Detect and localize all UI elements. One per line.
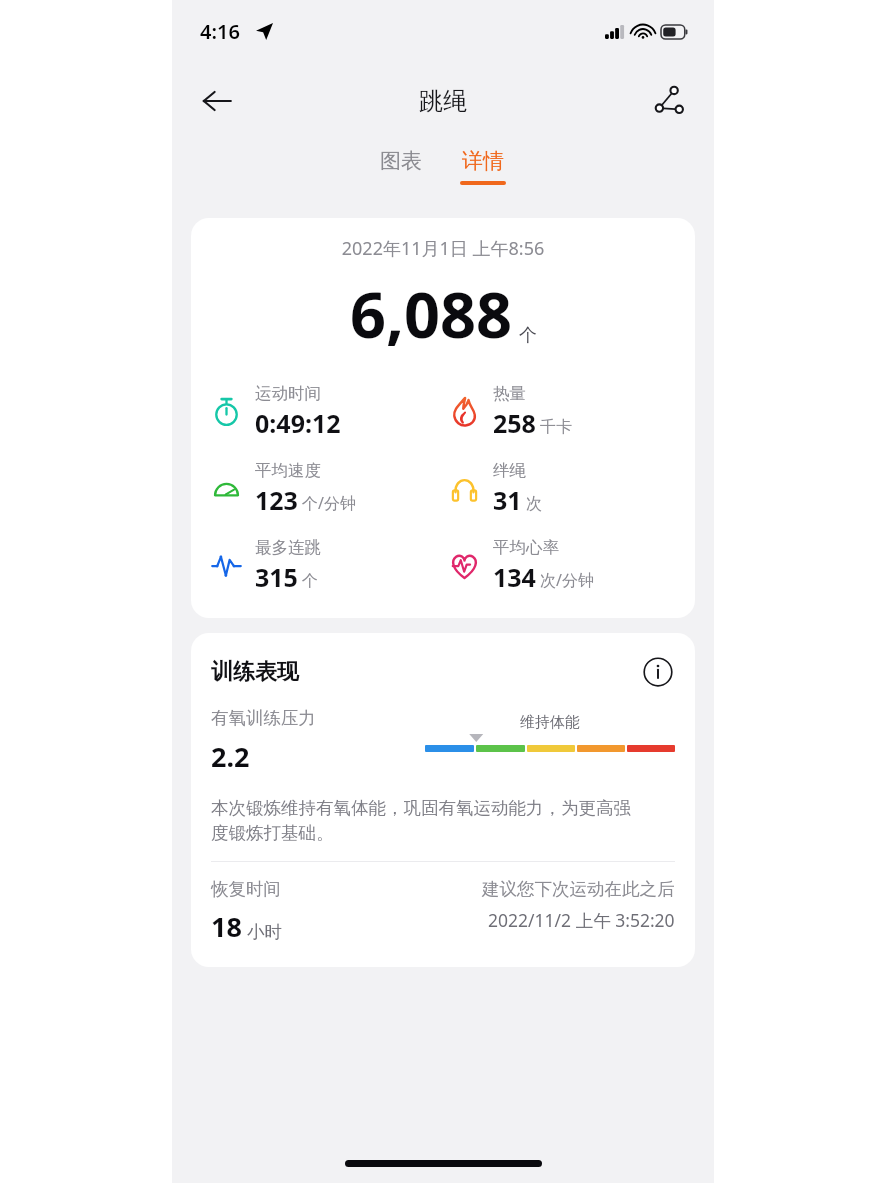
staticText: 6,088 <box>350 271 513 357</box>
staticText: 恢复时间 <box>211 878 281 900</box>
button[interactable]: Share <box>642 74 696 128</box>
button[interactable]: Back <box>190 74 244 128</box>
button[interactable]: 图表 <box>368 140 434 182</box>
staticText: 次/分钟 <box>540 569 594 591</box>
staticText: 2022/11/2 上午 3:52:20 <box>488 908 675 932</box>
staticText: 千卡 <box>540 417 572 437</box>
staticText: 跳绳 <box>419 86 467 116</box>
staticText: 个/分钟 <box>302 492 356 514</box>
staticText: 258 <box>493 406 536 440</box>
staticText: 18 <box>211 908 242 945</box>
staticText: 个 <box>302 571 318 591</box>
staticText: 0:49:12 <box>255 406 341 440</box>
staticText: 123 <box>255 483 298 517</box>
staticText: 平均速度 <box>255 460 321 481</box>
staticText: 小时 <box>247 921 282 943</box>
staticText: 详情 <box>462 148 504 174</box>
staticText: 最多连跳 <box>255 537 321 558</box>
staticText: 维持体能 <box>520 713 580 732</box>
staticText: 134 <box>493 560 536 594</box>
button[interactable]: Info <box>641 655 675 689</box>
staticText: 4:16 <box>200 18 240 45</box>
staticText: 有氧训练压力 <box>211 707 316 729</box>
staticText: 绊绳 <box>493 460 526 481</box>
button[interactable]: 详情 <box>448 140 518 193</box>
staticText: 2022年11月1日 上午8:56 <box>191 236 695 261</box>
staticText: 建议您下次运动在此之后 <box>482 878 675 900</box>
staticText: 热量 <box>493 383 526 404</box>
staticText: 训练表现 <box>211 658 641 686</box>
staticText: 平均心率 <box>493 537 559 558</box>
staticText: 31 <box>493 483 522 517</box>
staticText: 图表 <box>380 148 422 174</box>
staticText: 315 <box>255 560 298 594</box>
staticText: 次 <box>526 494 542 514</box>
staticText: 2.2 <box>211 738 250 775</box>
staticText: 运动时间 <box>255 383 321 404</box>
staticText: 个 <box>519 324 537 347</box>
staticText: 本次锻炼维持有氧体能，巩固有氧运动能力，为更高强 度锻炼打基础。 <box>211 797 631 845</box>
